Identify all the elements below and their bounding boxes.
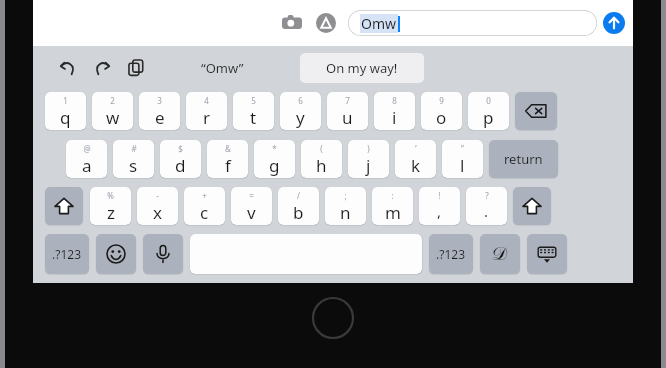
button[interactable]: Send [601,10,627,36]
staticText: 7 [345,95,350,106]
button[interactable]: $ [160,140,201,178]
staticText: return [504,150,543,168]
staticText: 5 [251,95,256,106]
button[interactable]: + [184,187,225,225]
staticText: / [297,190,300,201]
button[interactable]: 5 [233,92,274,130]
button[interactable]: Handwriting [480,234,520,274]
button[interactable]: .?123 [45,234,89,274]
staticText: % [107,190,114,201]
staticText: 9 [439,95,444,106]
staticText: On my way! [326,59,398,77]
staticText: ; [344,190,347,201]
button[interactable]: & [207,140,248,178]
staticText: f [225,154,231,177]
staticText: 1 [63,95,68,106]
button[interactable]: return [489,140,558,178]
staticText: m [385,201,401,224]
button[interactable]: Backspace [515,92,557,130]
button[interactable]: Apps [312,9,340,37]
staticText: 8 [392,95,397,106]
staticText: z [107,201,115,224]
staticText: 0 [486,95,491,106]
staticText: 𝒟 [492,245,508,264]
staticText: r [203,106,211,129]
button[interactable]: ’ [395,140,436,178]
button[interactable]: ” [442,140,483,178]
staticText: ) [367,143,370,154]
button[interactable]: 2 [92,92,133,130]
staticText: l [460,154,465,177]
staticText: & [225,143,231,154]
staticText: 6 [298,95,303,106]
staticText: t [250,106,257,129]
button[interactable]: 9 [421,92,462,130]
staticText: - [156,190,159,201]
staticText: j [366,154,371,177]
button[interactable]: Camera [278,9,306,37]
button[interactable]: # [113,140,154,178]
staticText: ’ [415,143,417,154]
staticText: o [436,106,447,129]
staticText: y [296,106,305,129]
staticText: e [155,106,165,129]
button[interactable]: Undo [53,53,83,83]
button[interactable]: Shift [513,187,551,225]
button[interactable]: Home [311,296,355,340]
button[interactable]: 6 [280,92,321,130]
button[interactable]: % [90,187,131,225]
staticText: + [202,190,207,201]
button[interactable]: Omw [348,10,597,36]
staticText: .?123 [436,246,466,262]
staticText: q [60,106,71,129]
staticText: # [131,143,137,154]
staticText: b [293,201,304,224]
staticText: c [200,201,209,224]
staticText: a [82,154,92,177]
staticText: $ [178,143,183,154]
button[interactable]: 7 [327,92,368,130]
staticText: ” [461,143,464,154]
button[interactable]: Paste [121,53,151,83]
button[interactable]: - [137,187,178,225]
staticText: Omw [361,14,397,33]
button[interactable]: Dictate [143,234,183,274]
button[interactable]: On my way! [300,53,424,83]
staticText: ( [320,143,323,154]
staticText: g [269,154,280,177]
staticText: = [249,190,254,201]
button[interactable]: Emoji [96,234,136,274]
button[interactable]: 8 [374,92,415,130]
button[interactable]: Hide keyboard [527,234,567,274]
button[interactable]: 1 [45,92,86,130]
staticText: : [391,190,394,201]
staticText: @ [83,143,91,154]
staticText: “Omw” [201,59,244,77]
staticText: ? [485,190,489,201]
button[interactable]: “Omw” [197,55,248,81]
staticText: ! [438,190,441,201]
button[interactable]: * [254,140,295,178]
button[interactable]: Shift [45,187,83,225]
button[interactable]: : [372,187,413,225]
staticText: p [483,106,494,129]
staticText: . [484,201,489,221]
button[interactable]: / [278,187,319,225]
button[interactable]: ; [325,187,366,225]
button[interactable]: Redo [87,53,117,83]
button[interactable]: ? [466,187,507,225]
button[interactable]: 4 [186,92,227,130]
button[interactable]: ( [301,140,342,178]
button[interactable]: ) [348,140,389,178]
button[interactable]: ! [419,187,460,225]
button[interactable]: = [231,187,272,225]
staticText: v [247,201,256,224]
button[interactable]: 3 [139,92,180,130]
staticText: 4 [204,95,209,106]
button[interactable]: .?123 [429,234,473,274]
button[interactable]: 0 [468,92,509,130]
button[interactable]: @ [66,140,107,178]
staticText: i [392,106,397,129]
staticText: , [437,201,442,221]
